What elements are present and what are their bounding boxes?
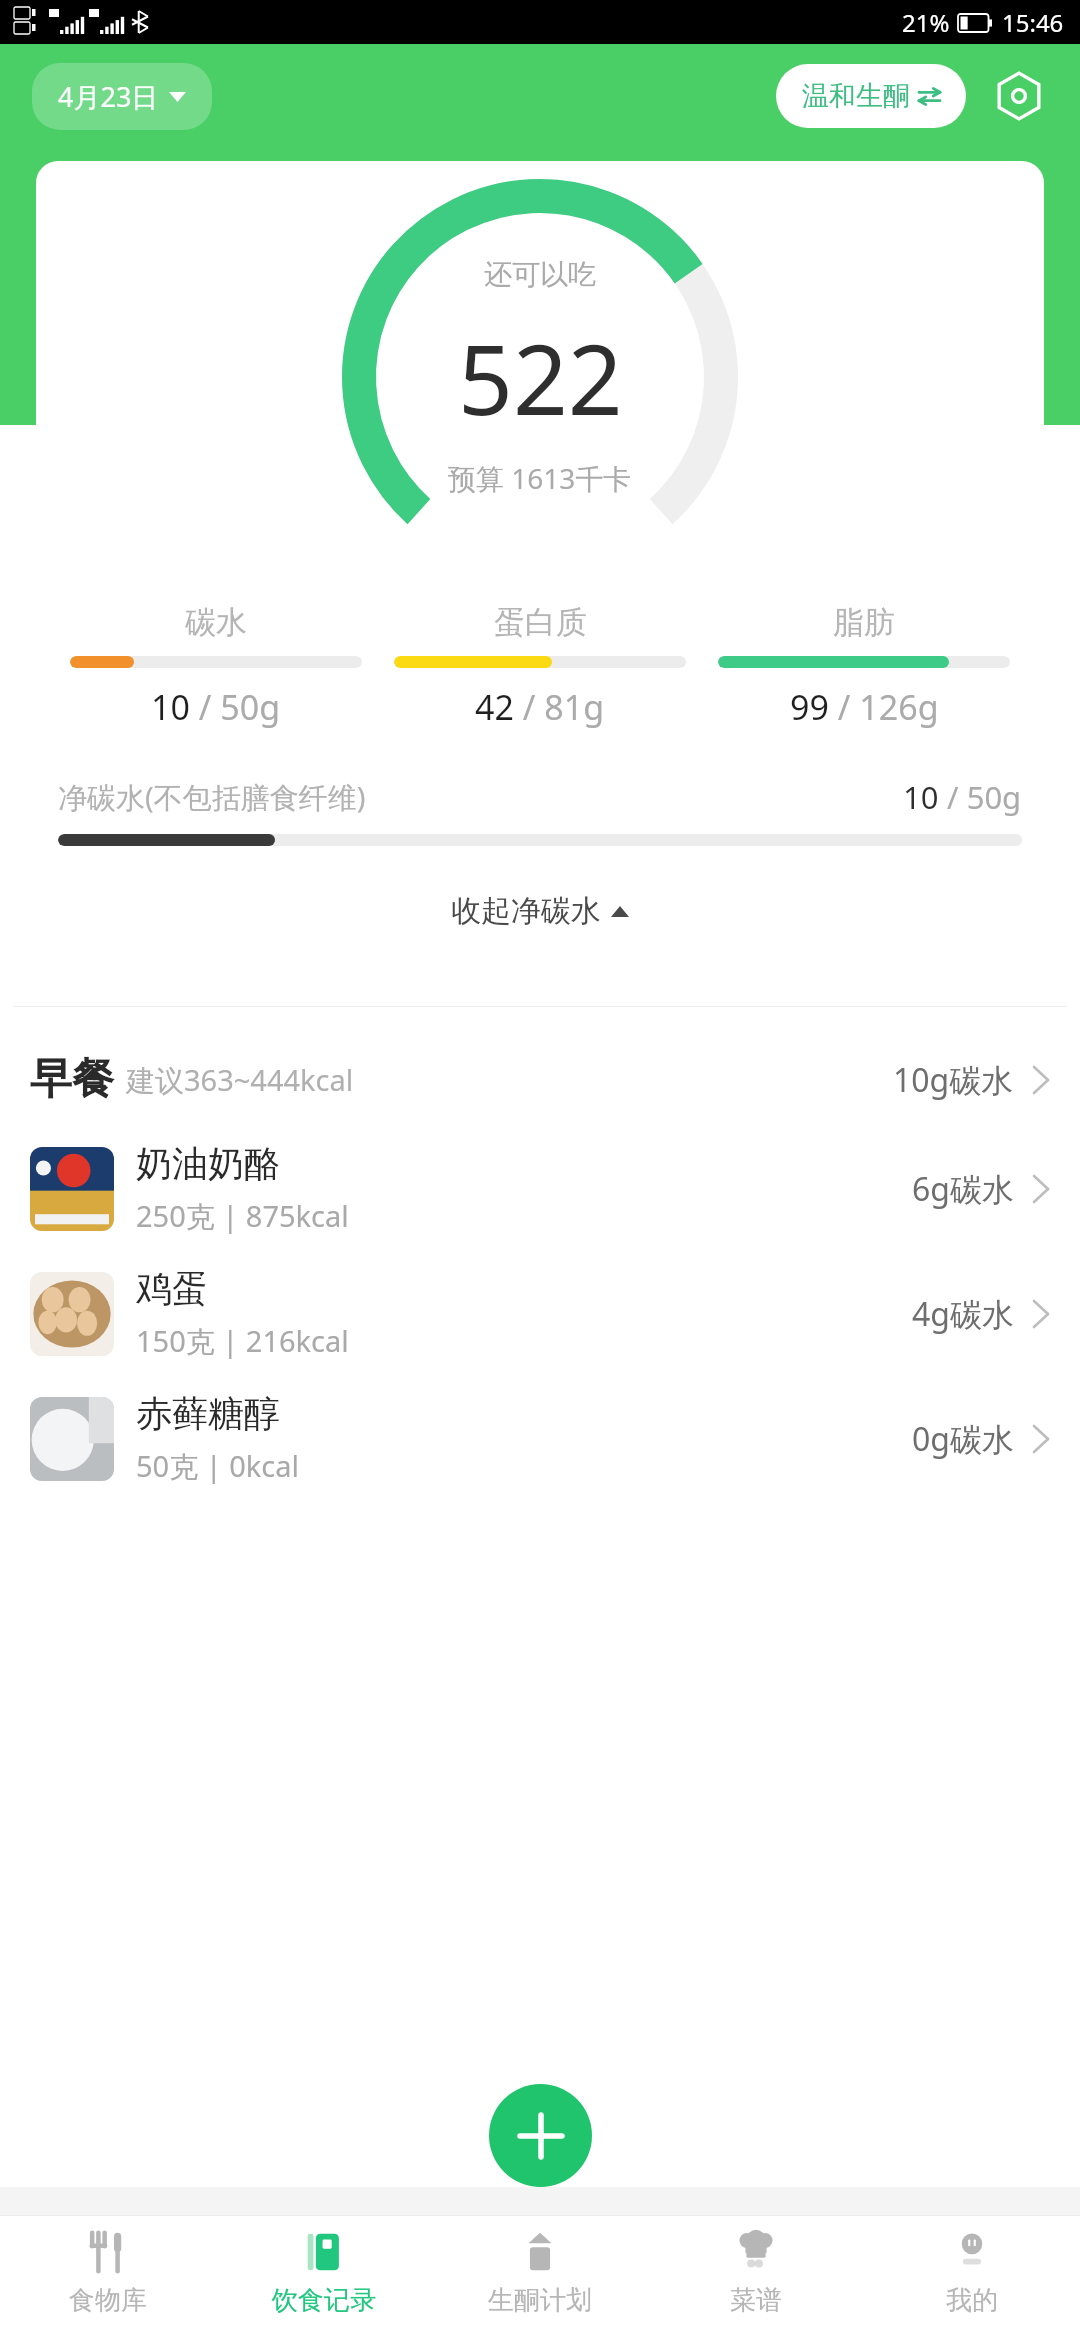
staticText: 10	[903, 776, 939, 818]
staticText: 预算 1613千卡	[448, 459, 632, 497]
button[interactable]: 生酮计划	[432, 2216, 648, 2340]
button[interactable]: 食物库	[0, 2216, 216, 2340]
staticText: 生酮计划	[488, 2284, 592, 2317]
staticText: 鸡蛋	[136, 1266, 208, 1311]
button[interactable]: 温和生酮	[776, 64, 966, 128]
staticText: 21%	[902, 6, 950, 39]
staticText: 赤藓糖醇	[136, 1391, 280, 1436]
staticText: 99	[790, 684, 829, 730]
staticText: 早餐	[30, 1053, 114, 1106]
staticText: 蛋白质	[494, 603, 587, 642]
staticText: 菜谱	[730, 2284, 782, 2317]
staticText: 奶油奶酪	[136, 1141, 280, 1186]
button[interactable]: 鸡蛋	[0, 1251, 1080, 1376]
staticText: 饮食记录	[272, 2284, 376, 2317]
staticText: 碳水	[185, 603, 247, 642]
staticText: 42	[475, 684, 514, 730]
staticText: 10g碳水	[893, 1058, 1014, 1102]
button[interactable]: 收起净碳水	[36, 886, 1044, 936]
staticText: / 50g	[939, 776, 1022, 818]
button[interactable]: Settings	[990, 67, 1048, 125]
staticText: 食物库	[69, 2284, 147, 2317]
staticText: 522	[458, 312, 623, 443]
staticText: 温和生酮	[802, 79, 910, 113]
staticText: 脂肪	[833, 603, 895, 642]
button[interactable]: Add food	[489, 2084, 592, 2187]
staticText: 收起净碳水	[451, 892, 601, 930]
button[interactable]: 赤藓糖醇	[0, 1376, 1080, 1501]
staticText: 10	[151, 684, 190, 730]
staticText: 我的	[946, 2284, 998, 2317]
staticText: / 126g	[829, 684, 939, 730]
staticText: / 50g	[190, 684, 281, 730]
button[interactable]: 菜谱	[648, 2216, 864, 2340]
staticText: 150克 | 216kcal	[136, 1321, 349, 1361]
staticText: 50克 | 0kcal	[136, 1446, 299, 1486]
staticText: 0g碳水	[912, 1417, 1014, 1461]
staticText: 15:46	[1002, 6, 1064, 39]
staticText: 还可以吃	[484, 257, 596, 292]
staticText: 净碳水(不包括膳食纤维)	[58, 777, 366, 817]
button[interactable]: 早餐	[0, 1043, 1080, 1116]
staticText: 4g碳水	[912, 1292, 1014, 1336]
staticText: / 81g	[514, 684, 605, 730]
staticText: 250克 | 875kcal	[136, 1196, 349, 1236]
button[interactable]: 4月23日	[32, 63, 212, 130]
staticText: 6g碳水	[912, 1167, 1014, 1211]
staticText: 4月23日	[58, 78, 159, 115]
button[interactable]: 我的	[864, 2216, 1080, 2340]
button[interactable]: 饮食记录	[216, 2216, 432, 2340]
staticText: 建议363~444kcal	[126, 1060, 354, 1100]
button[interactable]: 奶油奶酪	[0, 1126, 1080, 1251]
